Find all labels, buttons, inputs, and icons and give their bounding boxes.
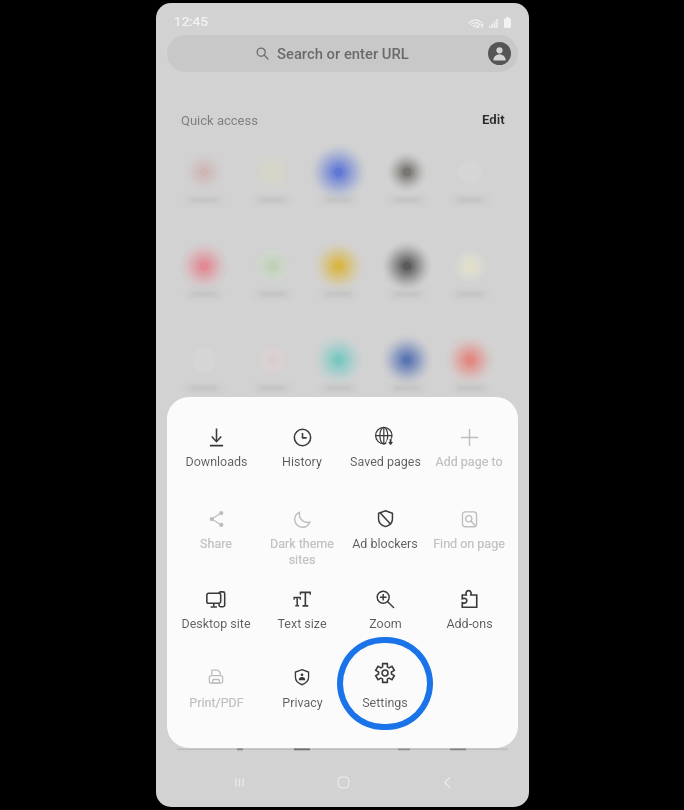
- button[interactable]: Search or enter URL: [167, 35, 518, 72]
- button[interactable]: Desktop site: [174, 588, 258, 650]
- staticText: Search or enter URL: [277, 45, 409, 62]
- button[interactable]: Saved pages: [343, 426, 427, 488]
- staticText: Settings: [362, 695, 408, 710]
- staticText: Privacy: [282, 695, 323, 710]
- button[interactable]: Share: [174, 508, 258, 570]
- button[interactable]: Privacy: [260, 667, 344, 729]
- staticText: Ad blockers: [352, 536, 418, 551]
- staticText: Print/PDF: [189, 695, 244, 710]
- button[interactable]: [427, 667, 511, 729]
- button[interactable]: Edit: [482, 112, 505, 127]
- staticText: 12:45: [174, 13, 208, 29]
- staticText: Downloads: [185, 454, 248, 469]
- staticText: Quick access: [181, 113, 258, 128]
- button[interactable]: Text size: [260, 588, 344, 650]
- button[interactable]: Account: [488, 42, 511, 65]
- staticText: Text size: [277, 616, 327, 631]
- button[interactable]: Add-ons: [427, 588, 511, 650]
- staticText: Zoom: [369, 616, 402, 631]
- staticText: History: [282, 454, 322, 469]
- button[interactable]: Add page to: [427, 426, 511, 488]
- staticText: Share: [200, 536, 232, 551]
- button[interactable]: Dark theme sites: [260, 508, 344, 570]
- staticText: Saved pages: [350, 454, 421, 469]
- button[interactable]: Print/PDF: [174, 667, 258, 729]
- staticText: Desktop site: [181, 616, 251, 631]
- button[interactable]: Ad blockers: [343, 508, 427, 570]
- button[interactable]: Find on page: [427, 508, 511, 570]
- button[interactable]: Downloads: [174, 426, 258, 488]
- staticText: Add-ons: [446, 616, 493, 631]
- staticText: Find on page: [433, 536, 505, 551]
- staticText: Edit: [482, 112, 505, 127]
- button[interactable]: History: [260, 426, 344, 488]
- staticText: Add page to: [435, 454, 503, 469]
- staticText: Dark theme sites: [260, 536, 344, 567]
- button[interactable]: Zoom: [343, 588, 427, 650]
- button[interactable]: Settings: [343, 667, 427, 729]
